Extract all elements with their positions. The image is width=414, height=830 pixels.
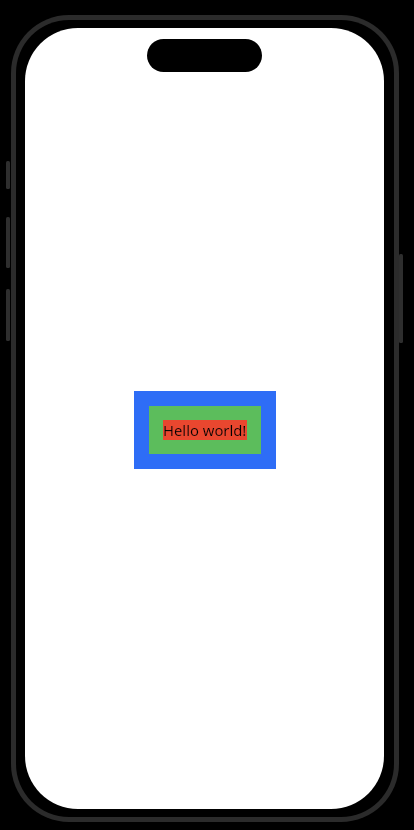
- staticText: Hello world!: [163, 420, 247, 440]
- button[interactable]: Hello world!: [134, 391, 276, 469]
- other: Dynamic island: [147, 39, 262, 72]
- button[interactable]: Volume down: [6, 289, 10, 341]
- button[interactable]: Volume up: [6, 217, 10, 268]
- button[interactable]: Silent switch: [6, 161, 10, 189]
